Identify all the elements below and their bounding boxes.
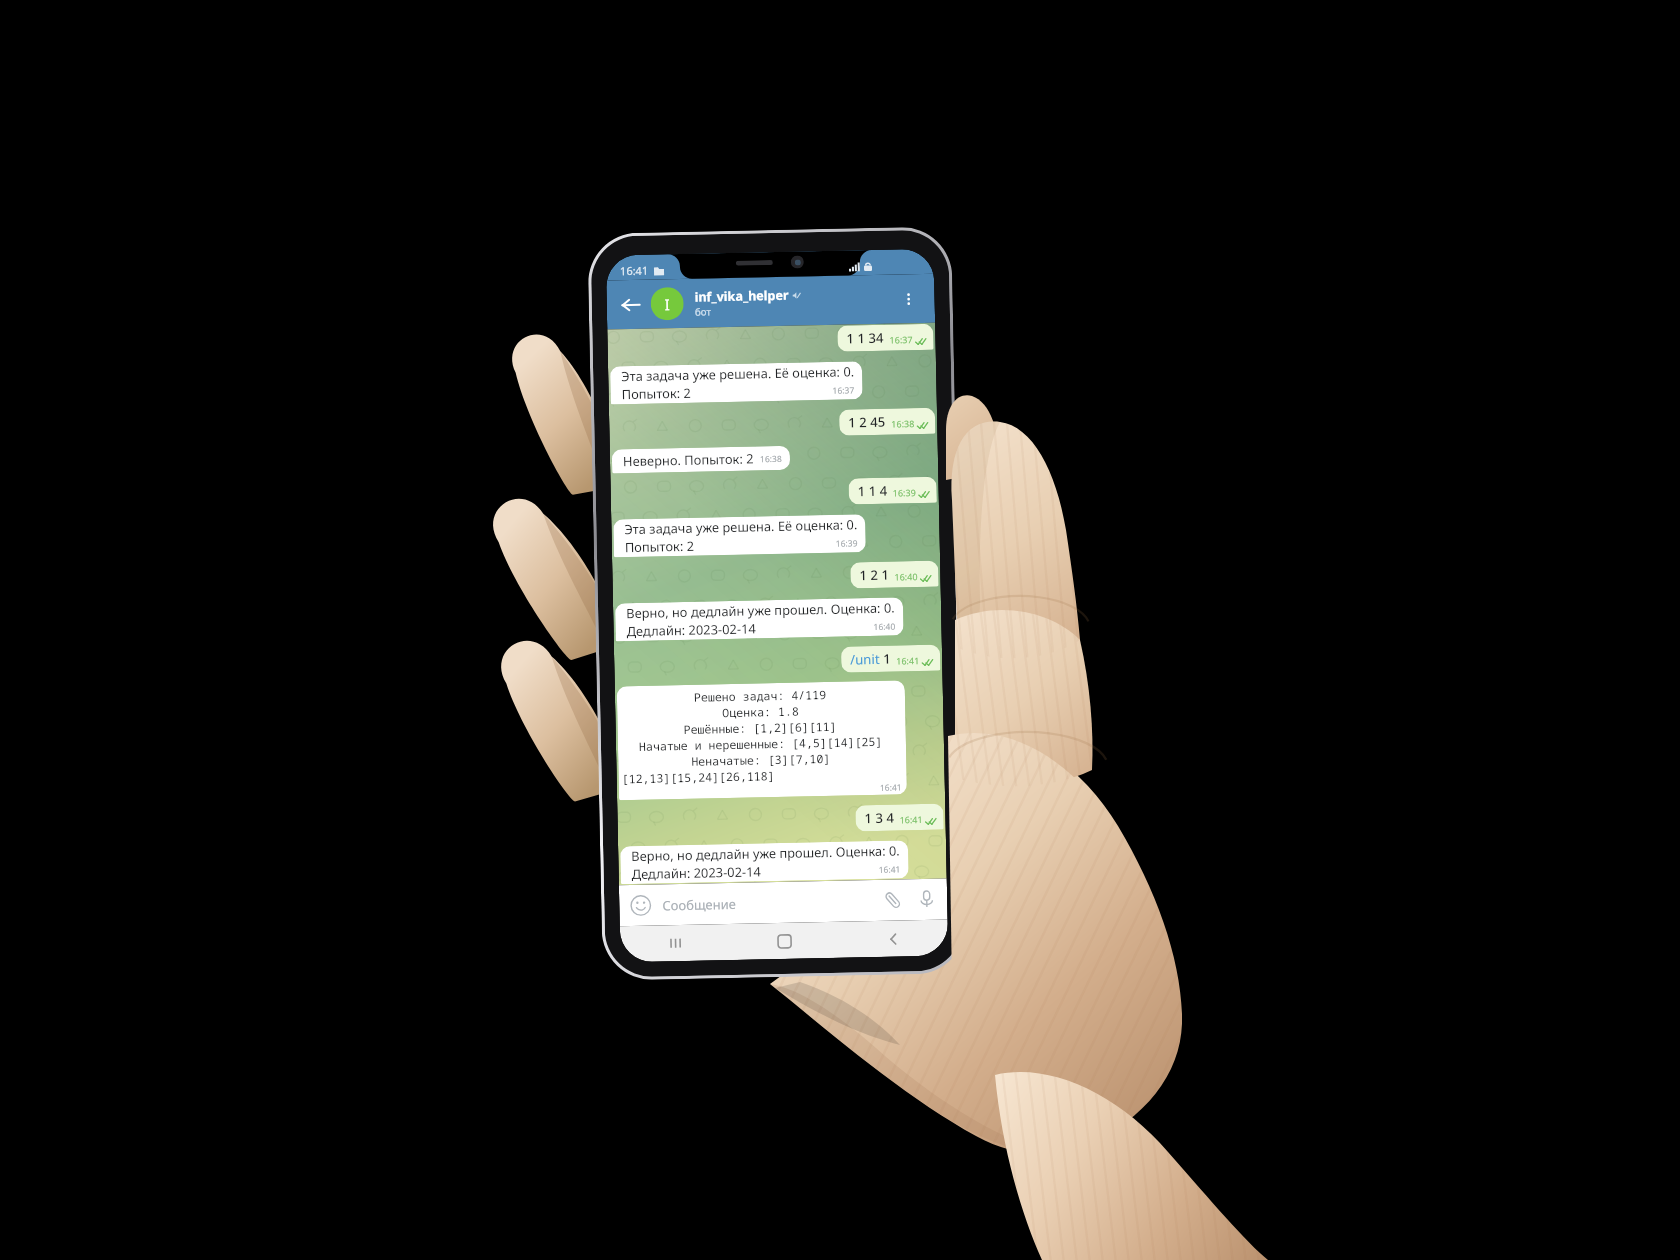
button[interactable]: 1 3 4: [855, 804, 944, 831]
button[interactable]: Решено задач: 4/119: [617, 680, 907, 800]
staticText: 16:37: [889, 333, 914, 346]
staticText: Дедлайн: 2023-02-14: [626, 619, 757, 640]
staticText: 1 3 4: [864, 809, 895, 827]
staticText: /unit: [850, 650, 880, 668]
button[interactable]: Эта задача уже решена. Её оценка: 0.: [613, 514, 866, 557]
button[interactable]: 1 2 45: [839, 408, 935, 436]
staticText: 16:40: [894, 570, 918, 582]
staticText: Сообщение: [662, 895, 736, 914]
button[interactable]: Home: [730, 922, 839, 960]
staticText: Эта задача уже решена. Её оценка: 0.: [621, 362, 854, 385]
staticText: Начатые и нерешенные: [4,5][14][25]: [639, 734, 883, 755]
staticText: 16:39: [836, 537, 858, 550]
staticText: Неверно. Попыток: 2: [623, 449, 754, 470]
staticText: 16:41: [899, 813, 924, 825]
staticText: Верно, но дедлайн уже прошел. Оценка: 0.: [631, 841, 900, 865]
staticText: [12,13][15,24][26,118]: [621, 768, 776, 787]
button[interactable]: /unit: [841, 645, 940, 673]
staticText: 16:38: [760, 453, 782, 465]
staticText: 16:41: [896, 654, 920, 666]
staticText: 1 1 34: [846, 329, 885, 347]
staticText: 16:41: [878, 863, 901, 876]
staticText: Оценка: 1.8: [722, 704, 799, 721]
button[interactable]: Неверно. Попыток: 2: [612, 446, 790, 473]
staticText: 1 1 4: [857, 482, 888, 500]
staticText: inf_vika_helper: [694, 287, 790, 306]
button[interactable]: 1 1 34: [837, 324, 934, 352]
staticText: 1 2 45: [848, 413, 886, 431]
staticText: Попыток: 2: [621, 384, 692, 403]
staticText: Решённые: [1,2][6][11]: [683, 719, 838, 738]
staticText: 16:37: [832, 384, 855, 397]
staticText: 16:38: [891, 417, 915, 430]
staticText: Эта задача уже решена. Её оценка: 0.: [624, 515, 857, 538]
button[interactable]: Back: [839, 919, 948, 958]
staticText: бот: [695, 305, 712, 319]
button[interactable]: Voice message: [917, 890, 936, 909]
staticText: Неначатые: [3][7,10]: [691, 751, 831, 770]
staticText: 16:41: [880, 781, 902, 794]
staticText: 1 2 1: [859, 566, 890, 584]
staticText: Решено задач: 4/119: [694, 687, 827, 706]
staticText: I: [664, 294, 671, 314]
button[interactable]: Emoji: [630, 895, 651, 916]
button[interactable]: Recents: [620, 924, 730, 962]
staticText: 16:40: [873, 620, 896, 633]
button[interactable]: Back: [614, 289, 647, 321]
staticText: Дедлайн: 2023-02-14: [631, 862, 762, 883]
staticText: Верно, но дедлайн уже прошел. Оценка: 0.: [626, 598, 895, 622]
button[interactable]: 1 1 4: [848, 477, 937, 504]
button[interactable]: Верно, но дедлайн уже прошел. Оценка: 0.: [620, 840, 909, 884]
button[interactable]: Эта задача уже решена. Её оценка: 0.: [610, 361, 863, 404]
button[interactable]: 1 2 1: [850, 561, 939, 588]
staticText: Попыток: 2: [625, 537, 695, 556]
staticText: 1: [883, 650, 891, 668]
button[interactable]: Верно, но дедлайн уже прошел. Оценка: 0.: [615, 597, 904, 641]
button[interactable]: Attach: [883, 890, 902, 910]
staticText: 16:39: [893, 486, 917, 499]
button[interactable]: More options: [894, 285, 923, 313]
staticText: 16:41: [620, 263, 649, 278]
